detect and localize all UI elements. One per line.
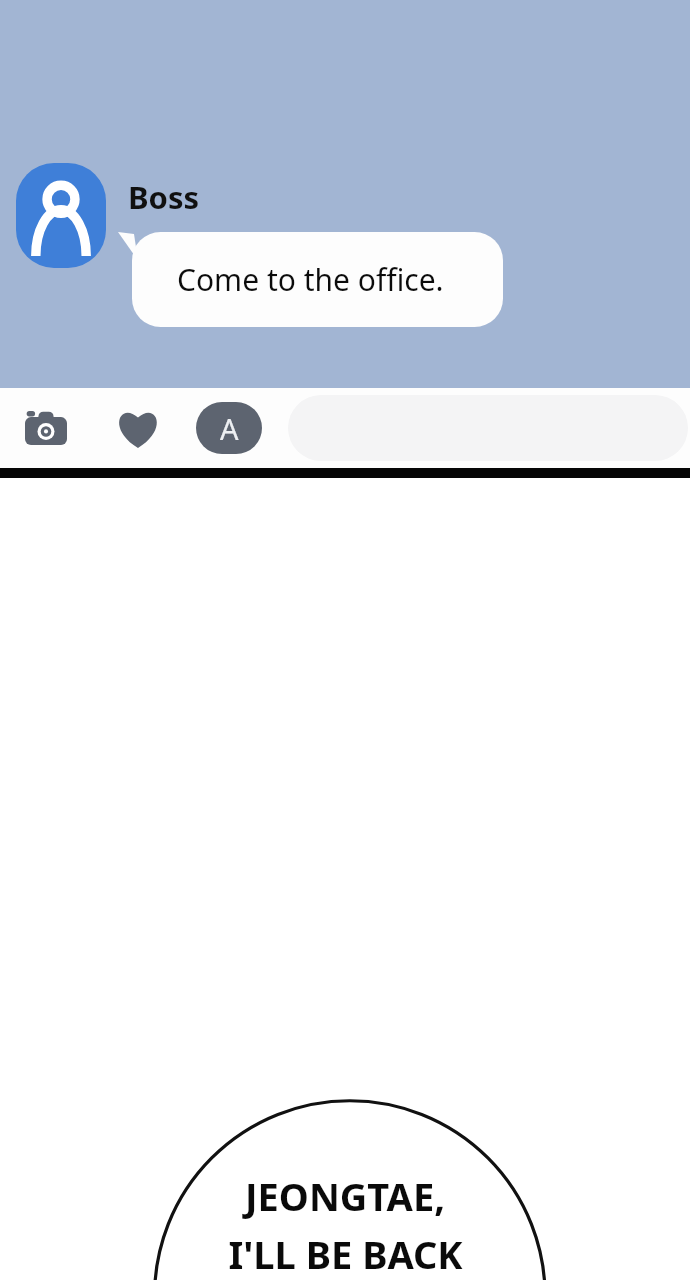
staticText: JEONGTAE,: [245, 1170, 445, 1222]
button[interactable]: Text style: [196, 402, 262, 454]
staticText: A: [220, 409, 239, 448]
button[interactable]: Come to the office.: [118, 232, 503, 327]
staticText: I'LL BE BACK: [228, 1228, 463, 1280]
staticText: Come to the office.: [177, 259, 444, 300]
staticText: Boss: [128, 176, 200, 218]
button[interactable]: Boss profile picture: [16, 163, 106, 268]
button[interactable]: Like: [110, 400, 166, 456]
button[interactable]: Camera: [18, 400, 74, 456]
